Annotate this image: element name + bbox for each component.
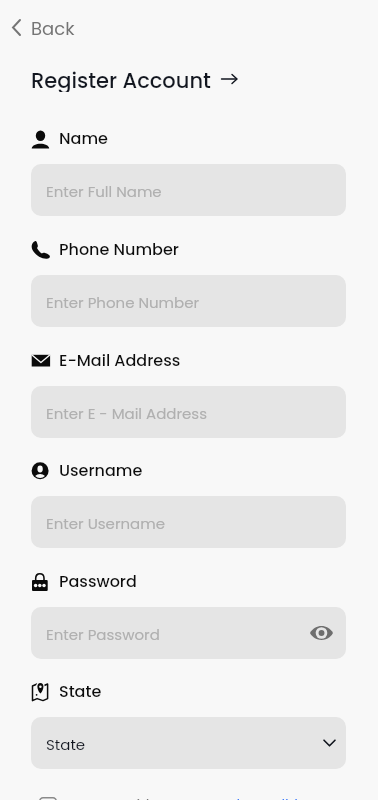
staticText: Enter Phone Number xyxy=(46,292,200,313)
other: Expand state list xyxy=(323,739,336,747)
staticText: State xyxy=(46,734,86,755)
button[interactable]: State xyxy=(31,717,346,769)
staticText: E-Mail Address xyxy=(59,349,181,371)
staticText: Enter Username xyxy=(46,513,165,534)
staticText: Enter Full Name xyxy=(46,181,162,202)
staticText: Name xyxy=(59,127,108,149)
button[interactable]: I agree with xyxy=(39,795,325,800)
staticText: Enter Password xyxy=(46,624,160,645)
staticText: State xyxy=(59,680,102,702)
staticText: Register Account xyxy=(31,66,211,92)
staticText: Phone Number xyxy=(59,238,179,260)
staticText: Username xyxy=(59,459,143,481)
staticText: Terms and Conditions xyxy=(160,794,325,800)
staticText: Enter E - Mail Address xyxy=(46,403,208,424)
button[interactable]: Show password xyxy=(310,625,333,641)
button[interactable]: Enter Phone Number xyxy=(31,275,346,327)
button[interactable]: Enter E - Mail Address xyxy=(31,386,346,438)
staticText: Back xyxy=(31,16,75,41)
button[interactable]: Enter Username xyxy=(31,496,346,548)
staticText: Password xyxy=(59,570,137,592)
staticText: I agree with xyxy=(68,794,160,800)
button[interactable]: Back xyxy=(6,12,84,44)
button[interactable]: Enter Full Name xyxy=(31,164,346,216)
button[interactable]: Enter Password xyxy=(31,607,346,659)
